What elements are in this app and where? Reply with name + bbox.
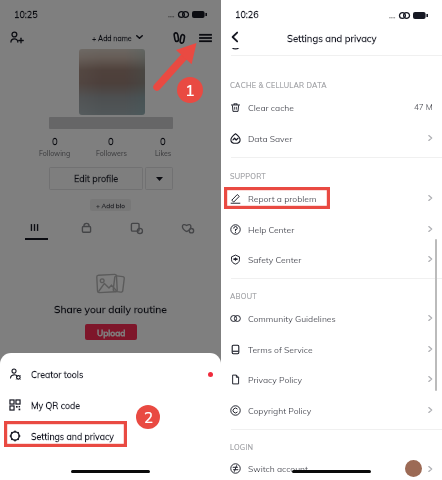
button[interactable]: Privacy Policy [221, 366, 442, 392]
staticText: Copyright Policy [248, 405, 312, 416]
button[interactable]: Clear cache [221, 94, 442, 120]
staticText: Community Guidelines [248, 313, 336, 324]
button[interactable]: Posts [26, 219, 43, 236]
button[interactable]: Help Center [221, 216, 442, 242]
staticText: Following [39, 149, 71, 158]
staticText: Share your daily routine [54, 303, 167, 316]
staticText: + Add bio [96, 201, 125, 209]
staticText: LOGIN [230, 443, 254, 452]
staticText: Privacy Policy [248, 374, 303, 385]
staticText: 0 [160, 135, 166, 147]
staticText: Edit profile [74, 173, 119, 184]
button[interactable]: Friends [174, 33, 185, 43]
staticText: My QR code [31, 400, 81, 411]
button[interactable]: Upload [85, 324, 137, 340]
button[interactable]: Terms of Service [221, 336, 442, 362]
staticText: 10:25 [14, 9, 38, 20]
button[interactable]: Expand name [136, 35, 143, 39]
staticText: 1 [185, 80, 195, 100]
button[interactable]: Edit profile [49, 167, 143, 190]
staticText: Settings and privacy [31, 431, 115, 442]
button[interactable]: Menu [200, 34, 211, 42]
button[interactable]: Back [229, 31, 241, 43]
staticText: Upload [97, 327, 126, 338]
button[interactable]: Community Guidelines [221, 305, 442, 331]
staticText: Settings and privacy [287, 32, 377, 44]
button[interactable]: Add friends [9, 30, 24, 45]
button[interactable]: Liked [179, 219, 196, 236]
staticText: 10:26 [235, 9, 259, 20]
staticText: Clear cache [248, 102, 294, 113]
staticText: 0 [108, 135, 114, 147]
button[interactable]: Safety Center [221, 246, 442, 272]
staticText: ABOUT [230, 292, 257, 301]
button[interactable]: Profile photo [79, 49, 145, 115]
button[interactable]: + Add bio [90, 199, 131, 211]
staticText: Switch account [248, 463, 309, 474]
button[interactable]: Copyright Policy [221, 397, 442, 423]
staticText: Terms of Service [248, 344, 313, 355]
staticText: 0 [52, 135, 58, 147]
staticText: SUPPORT [230, 172, 267, 181]
button[interactable]: 0 [139, 135, 187, 158]
button[interactable]: 0 [31, 135, 79, 158]
staticText: Report a problem [248, 193, 317, 204]
staticText: CACHE & CELLULAR DATA [230, 81, 327, 90]
button[interactable]: Settings and privacy [0, 423, 221, 449]
button[interactable]: Report a problem [221, 185, 442, 211]
staticText: 2 [144, 408, 153, 427]
staticText: 47 M [414, 102, 433, 112]
staticText: Followers [96, 149, 127, 158]
button[interactable]: Creator tools [0, 361, 221, 387]
staticText: .... [389, 11, 396, 20]
button[interactable]: More options [145, 167, 173, 190]
staticText: .... [168, 10, 175, 19]
button[interactable]: Private [78, 219, 95, 236]
button[interactable]: My QR code [0, 392, 221, 418]
button[interactable]: + Add name [86, 33, 138, 43]
button[interactable]: Data Saver [221, 125, 442, 151]
staticText: Creator tools [31, 369, 84, 380]
button[interactable]: Reposts [128, 219, 145, 236]
button[interactable]: Switch account [221, 458, 442, 479]
staticText: Likes [155, 149, 172, 158]
button[interactable]: 0 [87, 135, 135, 158]
staticText: + Add name [92, 34, 132, 43]
staticText: Data Saver [248, 133, 293, 144]
staticText: Safety Center [248, 254, 302, 265]
staticText: Help Center [248, 224, 295, 235]
